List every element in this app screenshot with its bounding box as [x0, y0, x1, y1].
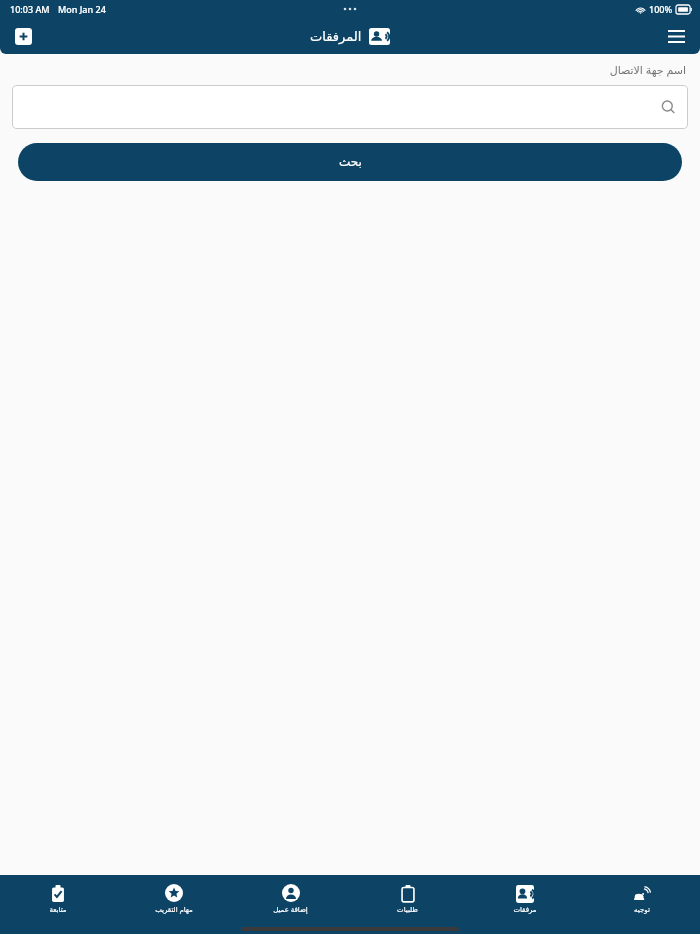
button[interactable]: إضافة عميل: [232, 875, 349, 923]
button[interactable]: بحث: [18, 143, 682, 181]
staticText: 100%: [649, 3, 673, 15]
button[interactable]: Menu: [660, 20, 692, 52]
button[interactable]: Add: [8, 21, 38, 51]
staticText: متابعة: [49, 906, 67, 914]
button[interactable]: متابعة: [0, 875, 116, 923]
button[interactable]: مرفقات: [466, 875, 583, 923]
staticText: مهام التقريب: [155, 905, 193, 915]
staticText: طلبيات: [397, 906, 418, 914]
staticText: المرفقات: [310, 29, 362, 44]
staticText: توجيه: [634, 906, 650, 914]
button[interactable]: توجيه: [583, 875, 700, 923]
staticText: بحث: [339, 155, 362, 169]
button[interactable]: Contact name input: [12, 85, 688, 129]
staticText: 10:03 AM: [10, 3, 50, 15]
staticText: اسم جهة الاتصال: [609, 62, 686, 77]
button[interactable]: طلبيات: [349, 875, 466, 923]
staticText: Mon Jan 24: [58, 3, 106, 15]
staticText: إضافة عميل: [273, 905, 308, 915]
staticText: مرفقات: [513, 906, 537, 914]
button[interactable]: مهام التقريب: [116, 875, 232, 923]
